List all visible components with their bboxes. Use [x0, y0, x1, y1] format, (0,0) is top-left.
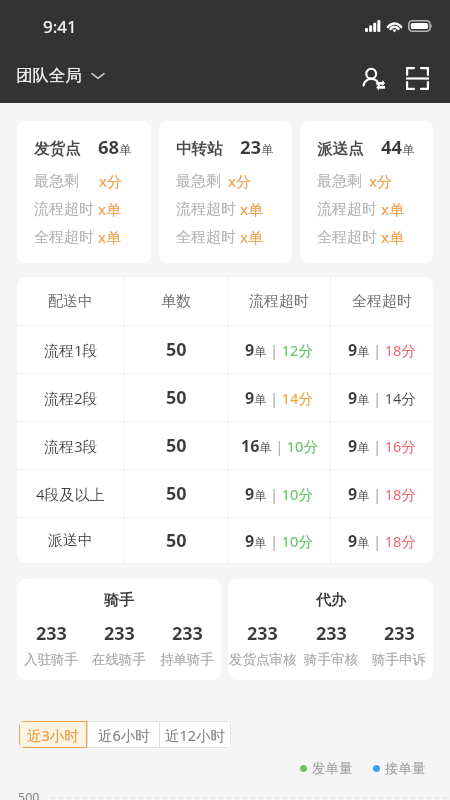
staticText: 骑手申诉 — [372, 651, 426, 668]
button[interactable]: Switch account — [351, 56, 395, 100]
staticText: 9单 | 12分 — [245, 339, 313, 361]
staticText: 代办 — [316, 591, 346, 610]
staticText: 50 — [166, 528, 187, 553]
staticText: 流程1段 — [44, 340, 98, 360]
staticText: x单 — [381, 199, 404, 219]
staticText: 流程2段 — [44, 388, 98, 408]
button[interactable]: 流程2段 — [17, 374, 433, 421]
staticText: 最急剩 — [176, 172, 221, 191]
staticText: x单 — [381, 227, 404, 247]
button[interactable]: 派送点 — [300, 121, 433, 263]
staticText: x单 — [98, 199, 121, 219]
staticText: 9单 | 14分 — [348, 387, 416, 409]
staticText: 9单 | 18分 — [348, 530, 416, 552]
staticText: x分 — [228, 171, 251, 191]
staticText: 9单 | 18分 — [348, 483, 416, 505]
staticText: 单数 — [161, 292, 191, 311]
staticText: 派送点 — [317, 139, 364, 159]
staticText: 持单骑手 — [160, 651, 214, 668]
staticText: 50 — [166, 433, 187, 458]
button[interactable]: 近3小时 — [20, 722, 87, 747]
staticText: 近12小时 — [165, 725, 226, 745]
staticText: 9单 | 10分 — [245, 483, 313, 505]
staticText: 233 — [247, 621, 278, 646]
button[interactable]: 近3小时 — [20, 722, 86, 747]
staticText: 16单 | 10分 — [241, 435, 318, 457]
staticText: x分 — [369, 171, 392, 191]
staticText: 流程3段 — [44, 436, 98, 456]
staticText: 50 — [166, 337, 187, 362]
staticText: 9单 | 16分 — [348, 435, 416, 457]
staticText: 流程超时 — [34, 200, 94, 219]
button[interactable]: 近6小时 — [88, 722, 159, 747]
staticText: 9单 | 10分 — [245, 530, 313, 552]
staticText: 9单 | 18分 — [348, 339, 416, 361]
staticText: 中转站 — [176, 139, 223, 159]
staticText: 入驻骑手 — [24, 651, 78, 668]
staticText: 流程超时 — [317, 200, 377, 219]
staticText: 发货点 — [34, 139, 81, 159]
button[interactable]: 流程1段 — [17, 326, 433, 373]
staticText: 全程超时 — [352, 292, 412, 311]
button[interactable]: 中转站 — [159, 121, 292, 263]
staticText: 233 — [316, 621, 347, 646]
staticText: 44单 — [381, 134, 415, 159]
staticText: 500 — [18, 789, 40, 800]
staticText: 流程超时 — [176, 200, 236, 219]
staticText: 派送中 — [48, 531, 93, 550]
staticText: x分 — [99, 171, 122, 191]
staticText: 全程超时 — [176, 228, 236, 247]
staticText: 9单 | 14分 — [245, 387, 313, 409]
staticText: 9:41 — [43, 15, 77, 38]
staticText: 发货点审核 — [229, 651, 297, 668]
staticText: 骑手 — [104, 591, 134, 610]
staticText: 近6小时 — [98, 725, 150, 745]
button[interactable]: 4段及以上 — [17, 470, 433, 517]
staticText: 50 — [166, 481, 187, 506]
staticText: 配送中 — [48, 292, 93, 311]
staticText: 团队全局 — [16, 65, 82, 86]
staticText: 最急剩 — [34, 172, 79, 191]
staticText: 233 — [36, 621, 67, 646]
button[interactable]: 流程3段 — [17, 422, 433, 469]
button[interactable]: 近12小时 — [160, 722, 230, 747]
staticText: 全程超时 — [34, 228, 94, 247]
button[interactable]: 团队全局 — [0, 57, 116, 94]
staticText: x单 — [98, 227, 121, 247]
staticText: 流程超时 — [249, 292, 309, 311]
staticText: 近3小时 — [27, 725, 79, 745]
staticText: 23单 — [240, 134, 274, 159]
staticText: 接单量 — [385, 760, 426, 777]
button[interactable]: 代办 — [228, 579, 433, 680]
staticText: x单 — [240, 199, 263, 219]
button[interactable]: 派送中 — [17, 518, 433, 563]
button[interactable]: 骑手 — [17, 579, 221, 680]
staticText: 发单量 — [312, 760, 353, 777]
staticText: 233 — [384, 621, 415, 646]
staticText: 4段及以上 — [36, 484, 105, 504]
staticText: 233 — [172, 621, 203, 646]
staticText: 骑手审核 — [304, 651, 358, 668]
staticText: 233 — [104, 621, 135, 646]
staticText: 50 — [166, 385, 187, 410]
button[interactable]: 发货点 — [17, 121, 151, 263]
staticText: 68单 — [98, 134, 132, 159]
staticText: x单 — [240, 227, 263, 247]
staticText: 最急剩 — [317, 172, 362, 191]
staticText: 全程超时 — [317, 228, 377, 247]
button[interactable]: Scan — [395, 56, 439, 100]
staticText: 近3小时 — [28, 725, 80, 745]
staticText: 在线骑手 — [92, 651, 146, 668]
